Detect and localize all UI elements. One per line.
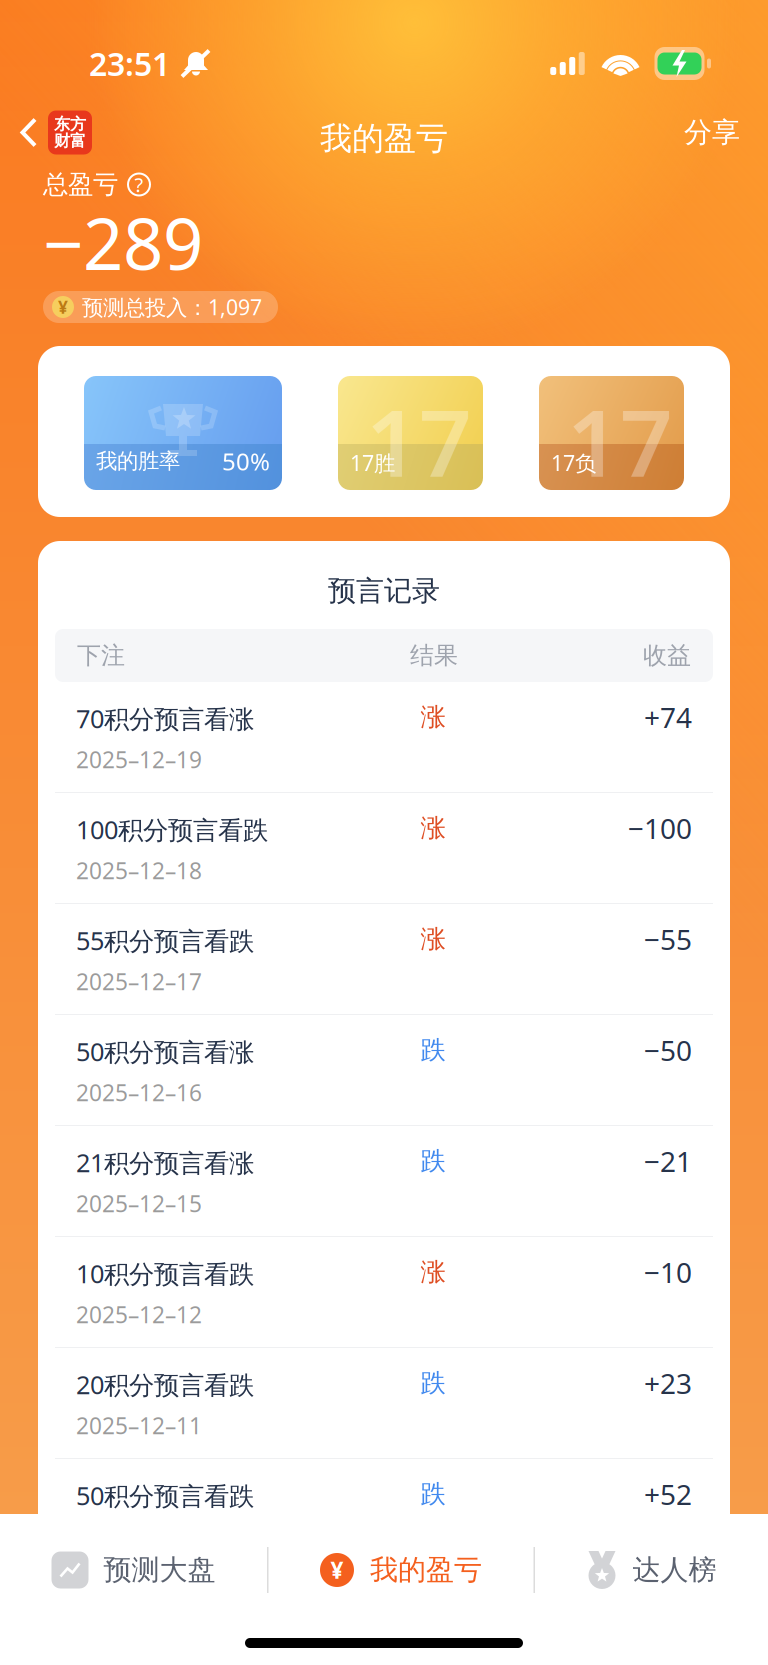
staticText: 结果 [410,641,458,670]
staticText: 20积分预言看跌 [76,1368,254,1401]
staticText: 2025–12–18 [76,855,202,885]
staticText: 跌 [420,1367,445,1399]
staticText: +52 [644,1475,692,1513]
staticText: −50 [644,1031,692,1069]
staticText: −21 [644,1142,692,1180]
staticText: 分享 [684,115,740,150]
staticText: 21积分预言看涨 [76,1146,254,1179]
staticText: −100 [628,809,692,847]
staticText: 我的盈亏 [320,119,448,158]
staticText: −10 [644,1253,692,1291]
staticText: 50积分预言看跌 [76,1479,254,1512]
button[interactable]: 17 [338,376,483,490]
staticText: 2025–12–11 [76,1410,202,1440]
staticText: 50积分预言看涨 [76,1035,254,1068]
staticText: −289 [43,196,203,289]
button[interactable]: 50积分预言看跌 [38,1458,730,1569]
button[interactable]: 100积分预言看跌 [38,792,730,903]
staticText: +23 [644,1364,692,1402]
staticText: 2025–12–15 [76,1188,202,1218]
staticText: 17负 [551,449,596,477]
staticText: 23:51 [89,42,170,85]
staticText: ¥ [58,295,68,318]
staticText: 100积分预言看跌 [76,813,268,846]
staticText: 17胜 [350,449,395,477]
button[interactable]: 55积分预言看跌 [38,903,730,1014]
staticText: 2025–12–17 [76,966,202,996]
staticText: 预言记录 [328,574,440,608]
staticText: 我的盈亏 [370,1553,482,1587]
staticText: 财富 [54,131,86,151]
staticText: −55 [644,920,692,958]
button[interactable]: ¥ [320,1535,482,1605]
staticText: 收益 [643,641,691,670]
staticText: 跌 [420,1478,445,1510]
staticText: 预测大盘 [103,1553,215,1587]
staticText: ? [134,171,143,198]
staticText: ¥ [330,1555,343,1585]
staticText: 达人榜 [632,1553,716,1587]
staticText: 10积分预言看跌 [76,1257,254,1290]
button[interactable]: 10积分预言看跌 [38,1236,730,1347]
staticText: +74 [644,698,692,736]
staticText: 55积分预言看跌 [76,924,254,957]
button[interactable]: 21积分预言看涨 [38,1125,730,1236]
staticText: 17 [366,380,472,502]
staticText: 涨 [420,812,445,844]
staticText: 总盈亏 [43,169,118,200]
staticText: 东方 [54,114,86,134]
staticText: 70积分预言看涨 [76,702,254,735]
staticText: 跌 [420,1034,445,1066]
staticText: 涨 [420,923,445,955]
staticText: 预测总投入：1,097 [82,293,262,321]
staticText: 2025–12–12 [76,1299,202,1329]
staticText: 2025–12–19 [76,744,202,774]
button[interactable]: 70积分预言看涨 [38,682,730,792]
button[interactable]: 返回 [0,97,106,167]
staticText: 17 [567,380,673,502]
staticText: 我的胜率 [96,448,180,474]
button[interactable]: 17 [539,376,684,490]
staticText: 涨 [420,1256,445,1288]
button[interactable]: 20积分预言看跌 [38,1347,730,1458]
button[interactable]: 分享 [654,97,768,167]
staticText: 涨 [420,701,445,733]
button[interactable]: 预测大盘 [51,1535,215,1605]
staticText: 50% [222,445,270,477]
button[interactable]: 我的胜率 [84,376,282,490]
button[interactable]: 50积分预言看涨 [38,1014,730,1125]
staticText: 下注 [77,641,125,670]
button[interactable]: 达人榜 [586,1535,716,1605]
staticText: 2025–12–16 [76,1077,202,1107]
staticText: 跌 [420,1145,445,1177]
